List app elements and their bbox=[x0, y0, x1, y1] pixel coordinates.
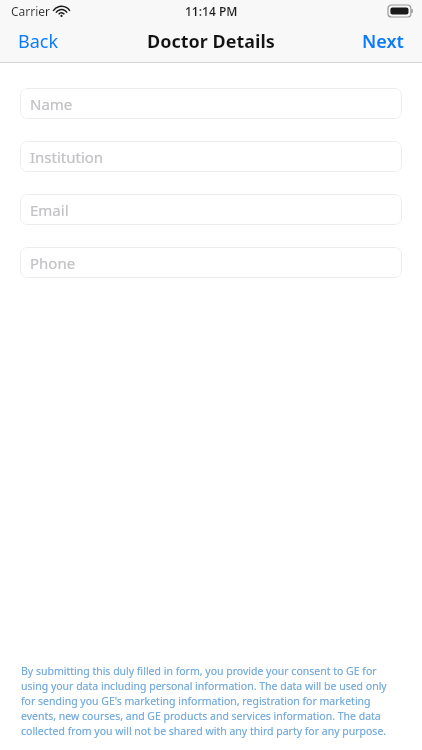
staticText: Name bbox=[30, 94, 73, 114]
staticText: Back bbox=[18, 29, 59, 54]
staticText: Institution bbox=[30, 147, 104, 167]
staticText: Next bbox=[362, 29, 404, 54]
button[interactable]: Name bbox=[20, 88, 402, 119]
staticText: By submitting this duly filled in form, … bbox=[21, 664, 401, 738]
button[interactable]: Next bbox=[344, 23, 422, 60]
button[interactable]: Phone bbox=[20, 247, 402, 278]
staticText: Carrier bbox=[11, 3, 51, 19]
staticText: Phone bbox=[30, 253, 76, 273]
staticText: Doctor Details bbox=[147, 29, 275, 54]
staticText: Email bbox=[30, 200, 69, 220]
button[interactable]: Email bbox=[20, 194, 402, 225]
staticText: 11:14 PM bbox=[185, 3, 238, 19]
button[interactable]: Institution bbox=[20, 141, 402, 172]
button[interactable]: Back bbox=[0, 23, 77, 60]
